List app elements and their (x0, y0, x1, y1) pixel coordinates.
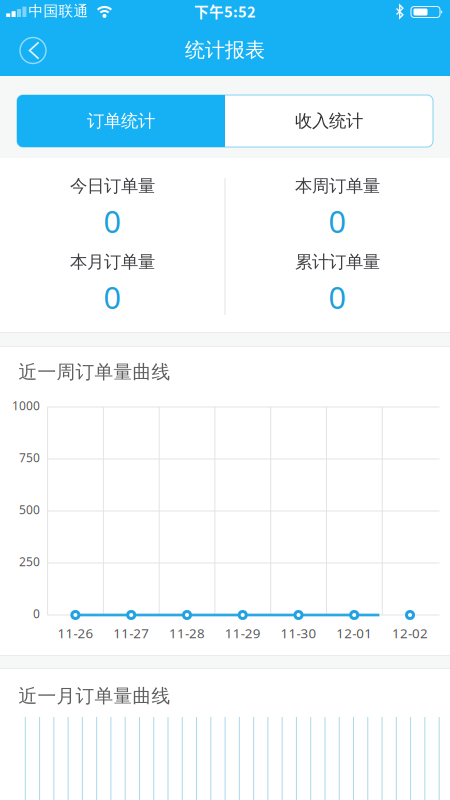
staticText: 0 (33, 605, 40, 621)
staticText: 0 (103, 201, 121, 241)
staticText: 近一月订单量曲线 (18, 684, 170, 707)
staticText: 12-02 (392, 624, 428, 642)
staticText: 累计订单量 (295, 251, 380, 273)
staticText: 下午5:52 (194, 0, 256, 22)
staticText: 0 (328, 201, 346, 241)
staticText: 750 (19, 449, 40, 465)
staticText: 11-29 (225, 624, 261, 642)
staticText: 收入统计 (295, 110, 363, 132)
staticText: 中国联通 (28, 2, 88, 20)
staticText: 500 (19, 501, 40, 517)
button[interactable]: 收入统计 (225, 95, 433, 147)
staticText: 11-27 (113, 624, 149, 642)
staticText: 近一周订单量曲线 (18, 360, 170, 383)
staticText: 0 (103, 277, 121, 317)
staticText: 本月订单量 (70, 251, 155, 273)
staticText: 11-26 (57, 624, 93, 642)
staticText: 统计报表 (185, 38, 265, 62)
staticText: 11-28 (169, 624, 205, 642)
staticText: 1000 (12, 397, 40, 413)
staticText: 12-01 (336, 624, 372, 642)
staticText: 今日订单量 (70, 175, 155, 197)
staticText: 0 (328, 277, 346, 317)
button[interactable] (13, 30, 53, 70)
staticText: 本周订单量 (295, 175, 380, 197)
staticText: 订单统计 (87, 110, 155, 132)
staticText: 250 (19, 553, 40, 569)
staticText: 11-30 (280, 624, 316, 642)
button[interactable]: 订单统计 (17, 95, 225, 147)
